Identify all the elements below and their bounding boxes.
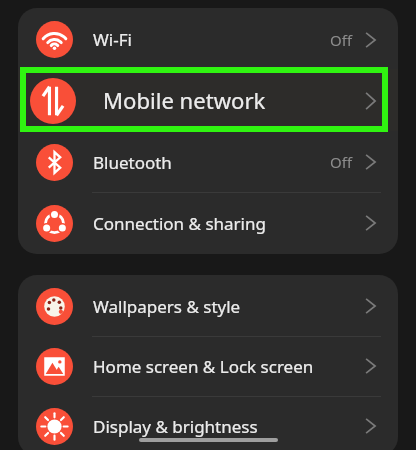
button[interactable] (18, 275, 398, 336)
button[interactable] (18, 8, 398, 69)
staticText: Home screen & Lock screen (93, 355, 314, 378)
button[interactable] (18, 131, 398, 192)
button[interactable] (18, 396, 398, 450)
button[interactable] (18, 336, 398, 396)
staticText: Display & brightness (93, 415, 258, 438)
staticText: Wallpapers & style (93, 295, 241, 318)
staticText: Off (330, 152, 353, 172)
staticText: Connection & sharing (93, 212, 266, 235)
button[interactable] (18, 192, 398, 254)
button[interactable] (18, 69, 398, 131)
staticText: Off (330, 30, 353, 50)
staticText: Mobile network (103, 85, 266, 115)
staticText: Bluetooth (93, 151, 172, 174)
staticText: Wi-Fi (93, 28, 132, 51)
